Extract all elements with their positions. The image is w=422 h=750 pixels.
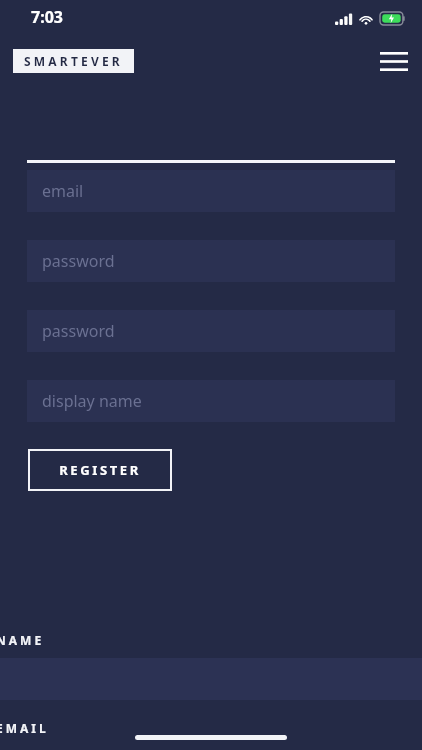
button[interactable]: display name [27, 380, 395, 422]
staticText: display name [42, 390, 142, 412]
button[interactable]: email [27, 170, 395, 212]
staticText: REGISTER [59, 461, 141, 479]
staticText: NAME [0, 632, 45, 648]
button[interactable]: password [27, 240, 395, 282]
button[interactable]: EMAIL [0, 700, 422, 750]
staticText: 7:03 [31, 6, 63, 28]
button[interactable]: Open menu [374, 44, 414, 78]
button[interactable]: REGISTER [28, 449, 172, 491]
staticText: SMARTEVER [24, 53, 123, 69]
button[interactable]: SMARTEVER [13, 49, 134, 73]
staticText: password [42, 250, 115, 272]
staticText: email [42, 180, 84, 202]
button[interactable]: NAME [0, 600, 422, 658]
button[interactable]: password [27, 310, 395, 352]
staticText: EMAIL [0, 720, 49, 736]
staticText: password [42, 320, 115, 342]
